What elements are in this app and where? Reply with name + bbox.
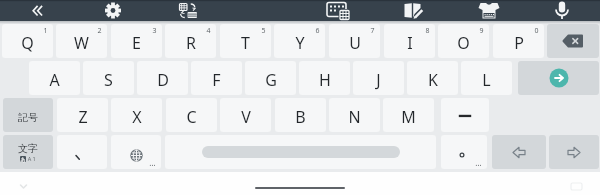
button[interactable]: L — [461, 61, 512, 95]
button[interactable] — [514, 0, 600, 21]
button[interactable] — [57, 135, 107, 169]
staticText: … — [475, 157, 482, 168]
staticText: Q — [21, 32, 34, 54]
staticText: 0 — [534, 26, 539, 36]
button[interactable]: B — [275, 98, 326, 132]
staticText: 5 — [261, 26, 266, 36]
button[interactable]: H — [299, 61, 350, 95]
button[interactable]: O — [438, 24, 489, 58]
button[interactable]: X — [111, 98, 162, 132]
staticText: F — [212, 69, 221, 91]
button[interactable] — [0, 0, 85, 21]
button[interactable]: R — [165, 24, 216, 58]
button[interactable]: C — [166, 98, 217, 132]
button[interactable]: J — [353, 61, 404, 95]
button[interactable]: V — [220, 98, 271, 132]
button[interactable]: E — [111, 24, 162, 58]
staticText: O — [457, 32, 470, 54]
staticText: S — [104, 69, 113, 91]
button[interactable] — [428, 0, 514, 21]
staticText: P — [514, 32, 524, 54]
staticText: 7 — [370, 26, 375, 36]
staticText: R — [186, 32, 196, 54]
staticText: 文字 — [18, 142, 38, 155]
staticText: B — [295, 106, 306, 128]
staticText: あ — [20, 156, 26, 162]
staticText: 8 — [425, 26, 430, 36]
button[interactable] — [170, 0, 256, 21]
staticText: G — [265, 69, 277, 91]
button[interactable]: Z — [57, 98, 108, 132]
button[interactable] — [165, 135, 436, 169]
staticText: T — [241, 32, 250, 54]
button[interactable]: … — [111, 135, 161, 169]
staticText: E — [132, 32, 141, 54]
staticText: 3 — [152, 26, 157, 36]
staticText: W — [74, 32, 89, 54]
staticText: X — [132, 106, 142, 128]
staticText: N — [348, 106, 361, 128]
button[interactable] — [441, 98, 489, 132]
staticText: Z — [78, 106, 88, 128]
button[interactable]: N — [329, 98, 380, 132]
staticText: K — [428, 69, 438, 91]
button[interactable]: F — [191, 61, 242, 95]
button[interactable]: W — [56, 24, 107, 58]
button[interactable]: 記号 — [3, 98, 53, 132]
staticText: A — [49, 69, 60, 91]
staticText: 9 — [479, 26, 484, 36]
staticText: Y — [295, 32, 305, 54]
button[interactable]: G — [245, 61, 296, 95]
staticText: L — [482, 69, 491, 91]
staticText: D — [157, 69, 169, 91]
button[interactable]: U — [329, 24, 380, 58]
button[interactable]: 文字 — [3, 135, 53, 169]
button[interactable]: D — [137, 61, 188, 95]
button[interactable] — [85, 0, 170, 21]
staticText: 1 — [43, 26, 48, 36]
button[interactable] — [256, 0, 342, 21]
button[interactable]: A — [29, 61, 80, 95]
button[interactable]: I — [384, 24, 435, 58]
button[interactable]: S — [83, 61, 134, 95]
button[interactable]: M — [383, 98, 434, 132]
staticText: V — [241, 106, 251, 128]
button[interactable]: T — [220, 24, 271, 58]
staticText: M — [401, 106, 416, 128]
button[interactable] — [518, 61, 599, 95]
button[interactable] — [492, 135, 546, 169]
button[interactable] — [547, 24, 599, 58]
button[interactable] — [342, 0, 428, 21]
staticText: J — [376, 69, 381, 91]
button[interactable]: Q — [2, 24, 53, 58]
staticText: 記号 — [18, 111, 38, 124]
staticText: 4 — [206, 26, 211, 36]
staticText: C — [186, 106, 197, 128]
staticText: … — [149, 157, 156, 168]
button[interactable]: … — [441, 135, 487, 169]
button[interactable] — [549, 135, 599, 169]
staticText: A 1 — [26, 155, 36, 162]
staticText: H — [319, 69, 331, 91]
staticText: 6 — [315, 26, 320, 36]
button[interactable]: Y — [274, 24, 325, 58]
staticText: U — [349, 32, 361, 54]
button[interactable]: P — [493, 24, 544, 58]
button[interactable]: K — [407, 61, 458, 95]
staticText: I — [407, 32, 413, 54]
staticText: 2 — [97, 26, 102, 36]
